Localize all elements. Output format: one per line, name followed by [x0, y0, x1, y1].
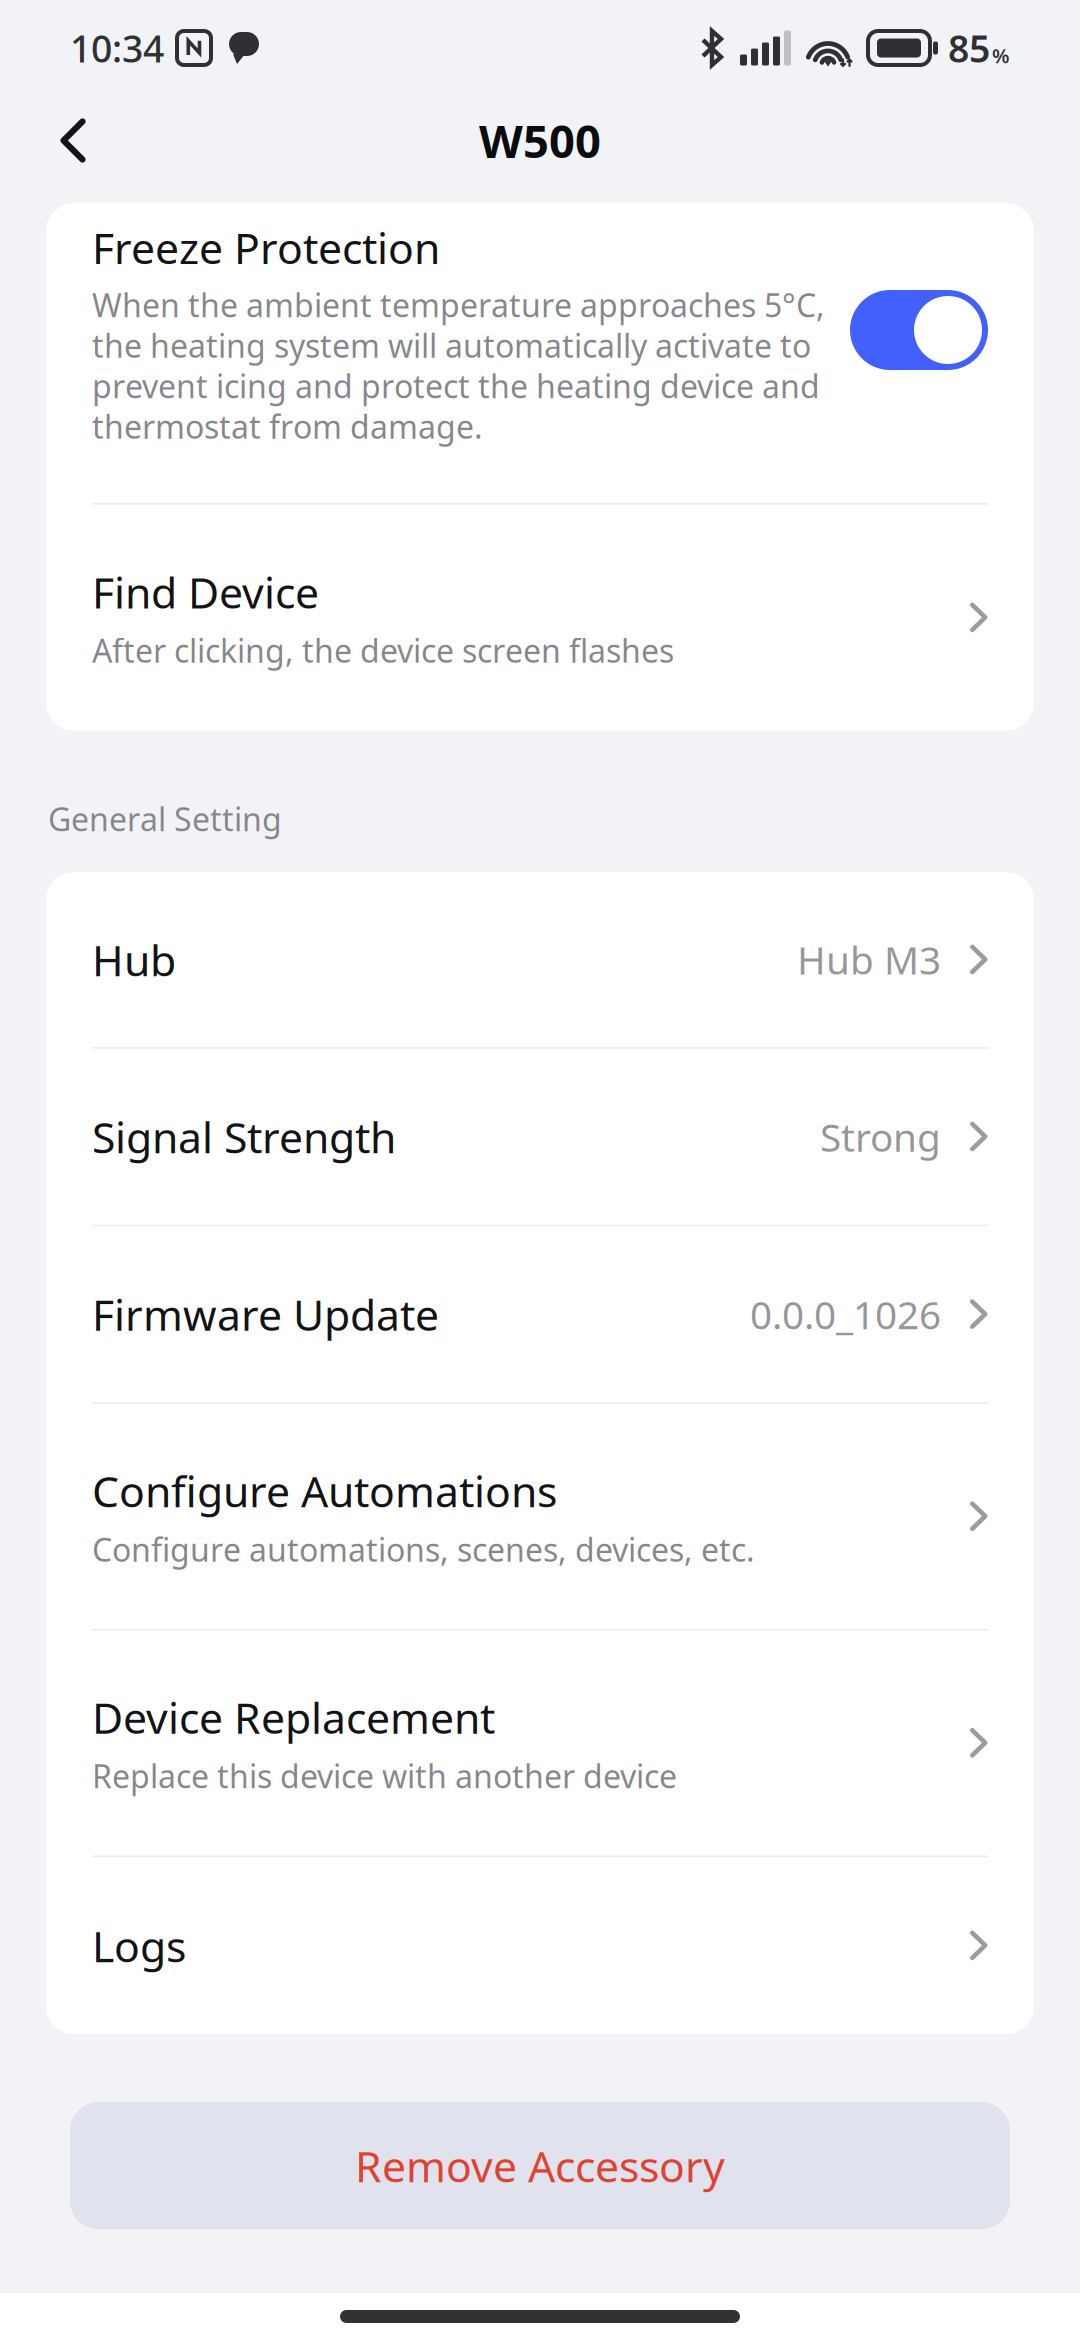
- button[interactable]: Remove Accessory: [70, 2102, 1010, 2229]
- staticText: Device Replacement: [92, 1689, 495, 1746]
- staticText: 85: [948, 23, 990, 73]
- staticText: When the ambient temperature approaches …: [92, 284, 825, 448]
- staticText: W500: [479, 110, 601, 171]
- staticText: General Setting: [48, 798, 282, 840]
- button[interactable]: Signal Strength: [46, 1049, 1034, 1225]
- staticText: Find Device: [92, 563, 319, 620]
- staticText: Logs: [92, 1917, 186, 1974]
- button[interactable]: Logs: [46, 1857, 1034, 2034]
- staticText: Hub M3: [797, 934, 941, 985]
- staticText: Replace this device with another device: [92, 1755, 677, 1797]
- button[interactable]: Back: [26, 101, 114, 197]
- staticText: Remove Accessory: [355, 2137, 725, 2194]
- staticText: Firmware Update: [92, 1286, 439, 1343]
- staticText: Configure automations, scenes, devices, …: [92, 1528, 755, 1570]
- staticText: After clicking, the device screen flashe…: [92, 629, 674, 672]
- button[interactable]: Firmware Update: [46, 1226, 1034, 1402]
- staticText: Strong: [820, 1111, 941, 1162]
- button[interactable]: Hub: [46, 872, 1034, 1047]
- staticText: 0.0.0_1026: [750, 1289, 941, 1340]
- staticText: Hub: [92, 931, 176, 988]
- staticText: Configure Automations: [92, 1462, 557, 1519]
- staticText: 10:34: [70, 23, 164, 73]
- button[interactable]: Device Replacement: [46, 1630, 1034, 1855]
- staticText: %: [992, 42, 1010, 69]
- staticText: Freeze Protection: [92, 219, 440, 276]
- staticText: Signal Strength: [92, 1108, 396, 1165]
- button[interactable]: Find Device: [46, 505, 1034, 731]
- button[interactable]: Configure Automations: [46, 1404, 1034, 1629]
